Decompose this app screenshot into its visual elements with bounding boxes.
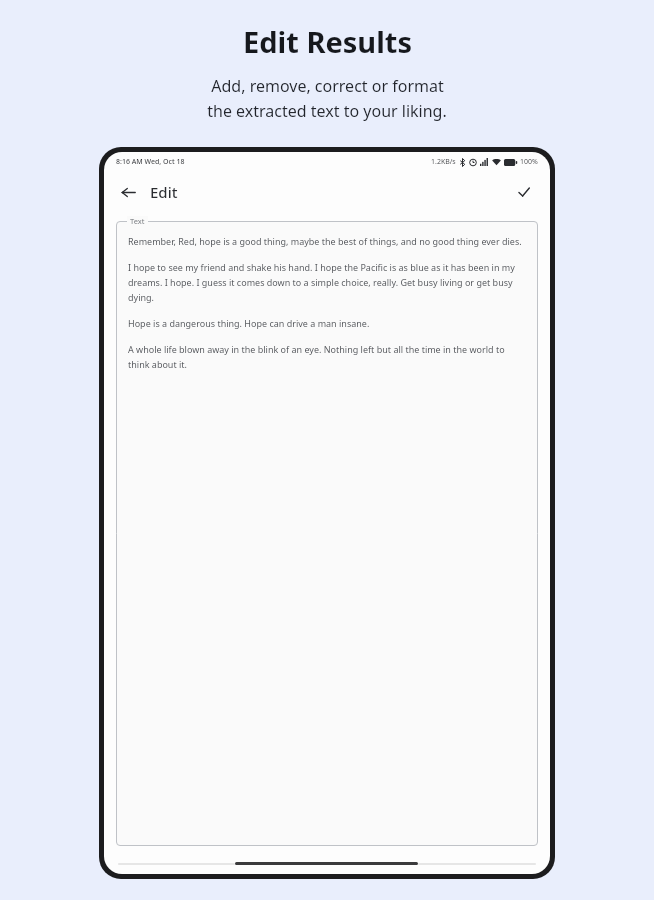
staticText: 100%: [520, 157, 538, 167]
staticText: Edit Results: [243, 22, 412, 61]
staticText: Edit: [150, 182, 178, 202]
staticText: I hope to see my friend and shake his ha…: [128, 261, 526, 303]
staticText: Add, remove, correct or format: [211, 75, 444, 97]
staticText: 1.2KB/s: [431, 157, 456, 167]
staticText: 8:16 AM Wed, Oct 18: [116, 157, 185, 167]
staticText: the extracted text to your liking.: [207, 100, 447, 122]
staticText: Remember, Red, hope is a good thing, may…: [128, 235, 522, 247]
button[interactable]: Save: [510, 178, 538, 206]
staticText: A whole life blown away in the blink of …: [128, 343, 526, 370]
other: Back: [118, 182, 138, 202]
button[interactable]: Back: [112, 178, 184, 206]
button[interactable]: Remember, Red, hope is a good thing, may…: [116, 221, 538, 846]
staticText: Hope is a dangerous thing. Hope can driv…: [128, 317, 370, 329]
staticText: Text: [130, 216, 145, 226]
